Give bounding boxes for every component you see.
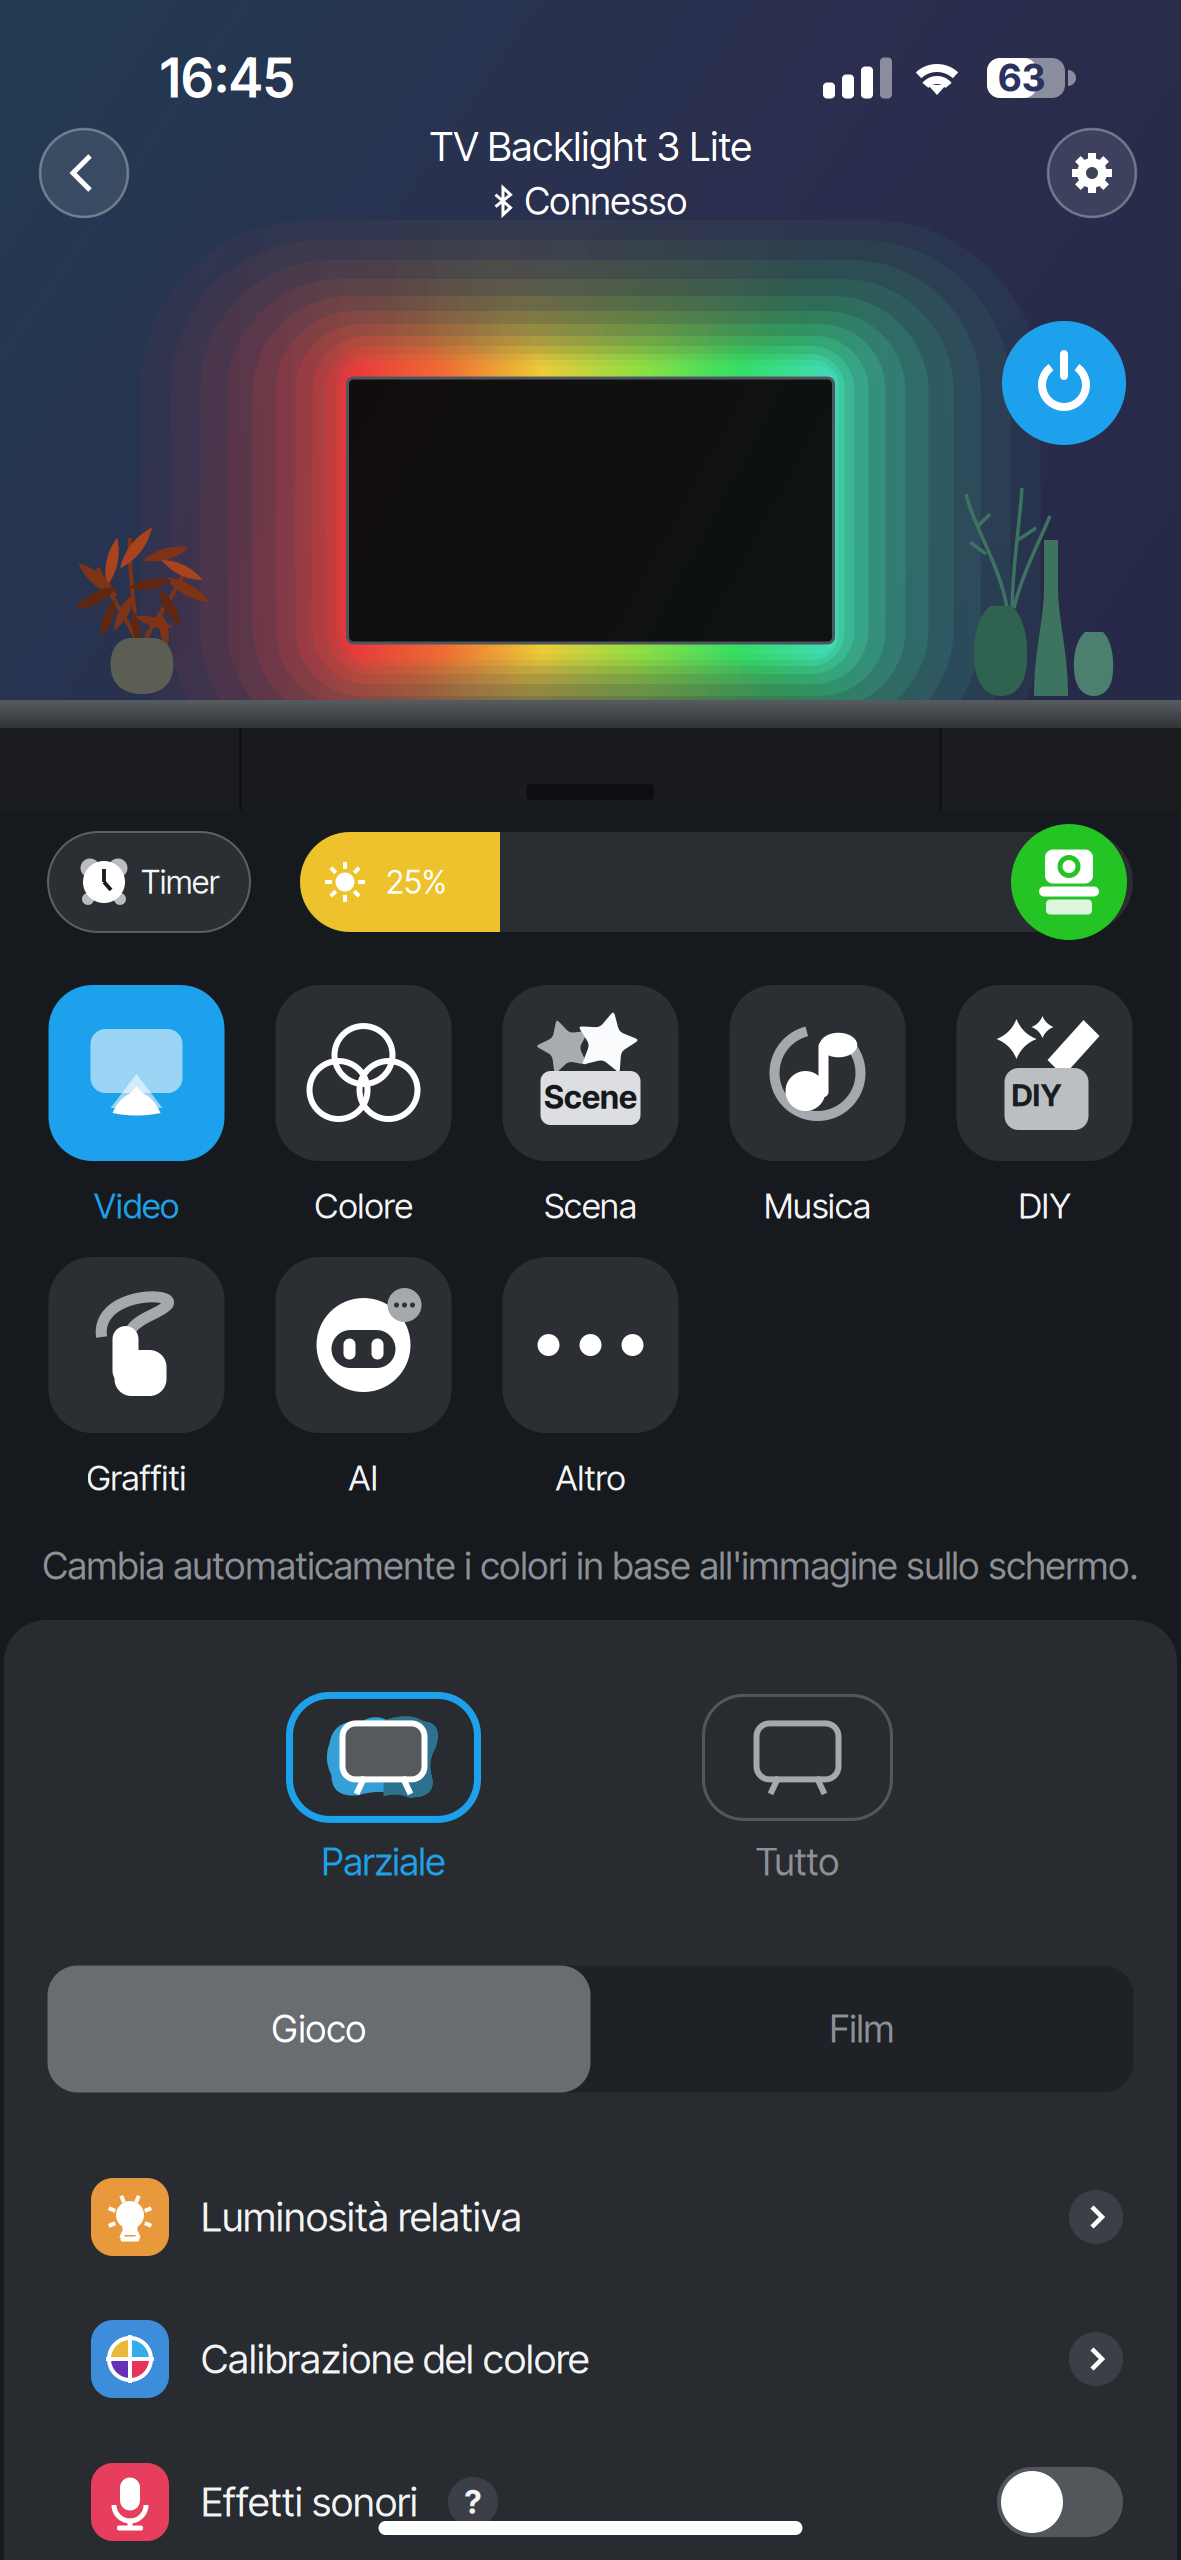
staticText: Musica	[764, 1185, 871, 1227]
button[interactable]: Graffiti	[48, 1255, 224, 1500]
staticText: Connesso	[524, 179, 687, 224]
button[interactable]: Musica	[729, 983, 905, 1228]
staticText: Film	[829, 2006, 894, 2052]
button[interactable]: AI	[275, 1255, 451, 1500]
staticText: Colore	[314, 1185, 412, 1227]
button[interactable]: Timer	[48, 832, 250, 932]
button[interactable]: Scene	[502, 983, 678, 1228]
button[interactable]: Effetti sonori	[4, 2429, 1177, 2560]
staticText: Timer	[141, 863, 219, 901]
staticText: 63	[998, 55, 1045, 101]
staticText: Gioco	[271, 2006, 366, 2052]
button[interactable]: Tutto	[703, 1695, 891, 1885]
button[interactable]: Luminosità relativa	[4, 2144, 1177, 2289]
staticText: 25%	[386, 863, 447, 901]
staticText: TV Backlight 3 Lite	[429, 122, 751, 171]
staticText: Scena	[544, 1185, 637, 1227]
staticText: Video	[94, 1185, 179, 1227]
button[interactable]: Parziale	[289, 1695, 477, 1885]
staticText: 16:45	[160, 46, 295, 110]
staticText: Scene	[544, 1078, 637, 1116]
button[interactable]: Settings	[1048, 129, 1136, 217]
staticText: DIY	[1011, 1076, 1061, 1114]
staticText: Altro	[555, 1457, 625, 1499]
button[interactable]: DIY	[956, 983, 1132, 1228]
staticText: Luminosità relativa	[201, 2193, 522, 2241]
button[interactable]: Lamp mode	[1011, 824, 1127, 940]
staticText: Graffiti	[86, 1457, 186, 1499]
button[interactable]: Film	[590, 1965, 1133, 2092]
staticText: DIY	[1018, 1185, 1070, 1227]
staticText: Tutto	[755, 1839, 839, 1885]
button[interactable]: Calibrazione del colore	[4, 2286, 1177, 2431]
button[interactable]: Altro	[502, 1255, 678, 1500]
staticText: Cambia automaticamente i colori in base …	[42, 1543, 1138, 1589]
staticText: ?	[464, 2483, 481, 2521]
staticText: Effetti sonori	[201, 2478, 418, 2526]
button[interactable]: Back	[40, 129, 128, 217]
staticText: AI	[348, 1457, 378, 1499]
staticText: Calibrazione del colore	[201, 2335, 589, 2383]
button[interactable]: Colore	[275, 983, 451, 1228]
button[interactable]: Gioco	[47, 1965, 590, 2092]
staticText: Parziale	[321, 1839, 445, 1885]
button[interactable]: Video	[48, 983, 224, 1228]
button[interactable]: Power	[1002, 321, 1126, 445]
